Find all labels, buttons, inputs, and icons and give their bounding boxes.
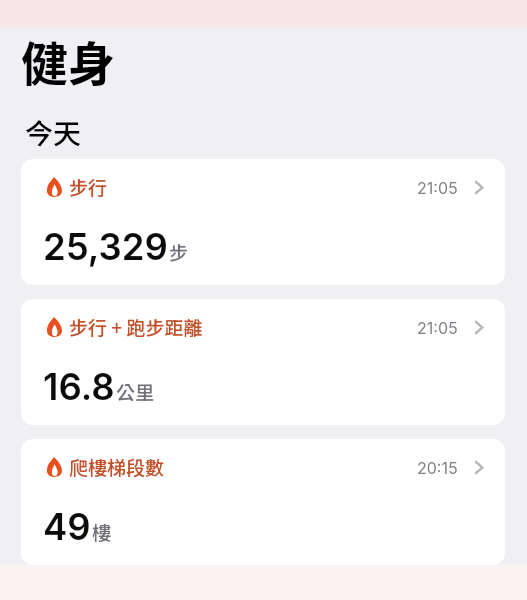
staticText: 今天 [25,112,82,153]
other: Show details [475,181,483,194]
other: Show details [475,461,483,474]
staticText: 步行 + 跑步距離 [69,313,203,341]
other: Activity [47,317,62,337]
other: Show details [475,321,483,334]
other: Activity [47,177,62,197]
staticText: 49 [43,505,91,549]
staticText: 16.8 [43,365,115,409]
staticText: 步行 [69,173,108,201]
button[interactable]: Activity [21,439,505,565]
other: Activity [47,457,62,477]
button[interactable]: Activity [21,159,505,285]
staticText: 21:05 [417,318,458,337]
button[interactable]: Activity [21,299,505,425]
staticText: 樓 [92,518,112,546]
staticText: 公里 [116,378,155,406]
staticText: 步 [169,238,189,266]
staticText: 21:05 [417,178,458,197]
staticText: 20:15 [417,458,458,477]
staticText: 爬樓梯段數 [69,453,165,481]
staticText: 健身 [21,26,115,94]
staticText: 25,329 [43,225,168,269]
